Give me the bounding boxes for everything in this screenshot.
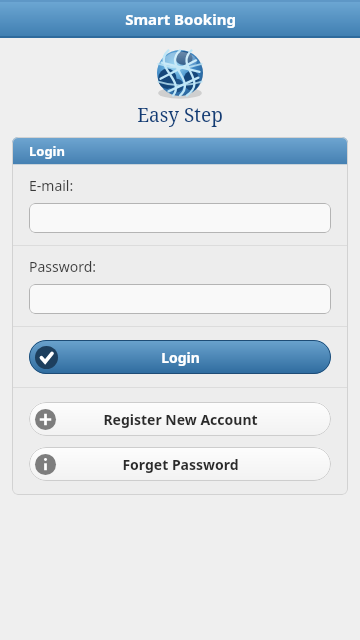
staticText: Login bbox=[161, 348, 200, 367]
button[interactable]: Login bbox=[29, 340, 331, 374]
staticText: Smart Booking bbox=[125, 9, 236, 29]
button[interactable] bbox=[29, 284, 331, 314]
button[interactable]: Register New Account bbox=[29, 402, 331, 436]
staticText: Forget Password bbox=[122, 455, 239, 474]
staticText: E-mail: bbox=[29, 176, 74, 195]
staticText: Register New Account bbox=[103, 410, 258, 429]
staticText: Password: bbox=[29, 257, 97, 276]
staticText: Easy Step bbox=[137, 102, 223, 128]
button[interactable]: Forget Password bbox=[29, 447, 331, 481]
button[interactable] bbox=[29, 203, 331, 233]
staticText: Login bbox=[29, 142, 65, 160]
